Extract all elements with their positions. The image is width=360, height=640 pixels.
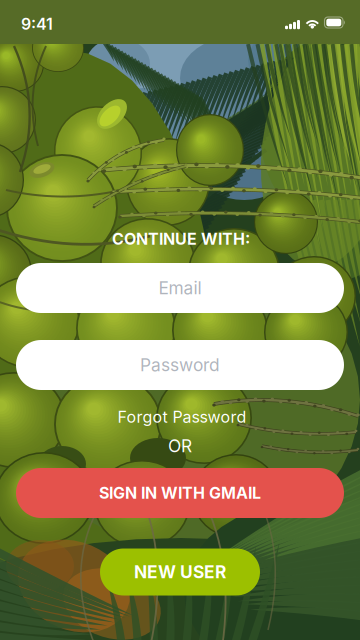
staticText: Forgot Password bbox=[117, 407, 246, 427]
button[interactable]: NEW USER bbox=[100, 548, 260, 595]
staticText: Password bbox=[140, 354, 220, 375]
button[interactable]: OR bbox=[160, 435, 200, 457]
staticText: SIGN IN WITH GMAIL bbox=[99, 483, 261, 503]
staticText: 9:41 bbox=[21, 14, 53, 34]
button[interactable]: Email bbox=[16, 263, 344, 313]
staticText: Email bbox=[158, 277, 201, 298]
staticText: OR bbox=[168, 435, 192, 456]
button[interactable]: Forgot Password bbox=[107, 403, 257, 431]
button[interactable]: SIGN IN WITH GMAIL bbox=[16, 468, 344, 518]
staticText: CONTINUE WITH: bbox=[112, 229, 250, 249]
button[interactable]: Password bbox=[16, 340, 344, 390]
staticText: NEW USER bbox=[134, 561, 226, 582]
